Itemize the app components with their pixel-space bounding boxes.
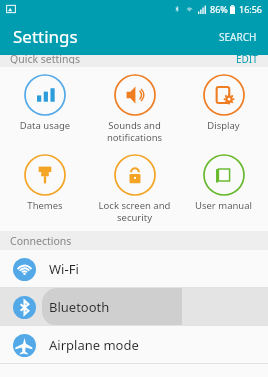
staticText: Connections: [10, 234, 72, 248]
staticText: Display: [179, 119, 268, 132]
button[interactable]: Quick settings: [0, 55, 268, 67]
staticText: Sounds and notifications: [90, 119, 179, 144]
staticText: Wi-Fi: [49, 260, 79, 278]
staticText: EDIT: [236, 52, 258, 64]
button[interactable]: Bluetooth: [0, 288, 268, 326]
staticText: Lock screen and security: [90, 199, 179, 224]
staticText: 86%: [210, 3, 228, 15]
staticText: Airplane mode: [49, 336, 139, 354]
button[interactable]: User manual: [179, 152, 268, 214]
staticText: SEARCH: [219, 30, 257, 44]
button[interactable]: Themes: [0, 152, 90, 214]
button[interactable]: Airplane mode: [0, 326, 268, 364]
staticText: Quick settings: [10, 52, 80, 64]
staticText: User manual: [179, 199, 268, 212]
button[interactable]: Lock screen and security: [90, 152, 179, 226]
button[interactable]: Display: [179, 72, 268, 134]
staticText: Themes: [0, 199, 90, 212]
button[interactable]: Sounds and notifications: [90, 72, 179, 146]
staticText: Settings: [13, 25, 78, 48]
button[interactable]: Wi-Fi: [0, 250, 268, 288]
staticText: Data usage: [0, 119, 90, 132]
staticText: 16:56: [239, 3, 263, 15]
staticText: Bluetooth: [49, 298, 110, 316]
button[interactable]: Data usage: [0, 72, 90, 134]
button[interactable]: SEARCH: [208, 21, 268, 53]
